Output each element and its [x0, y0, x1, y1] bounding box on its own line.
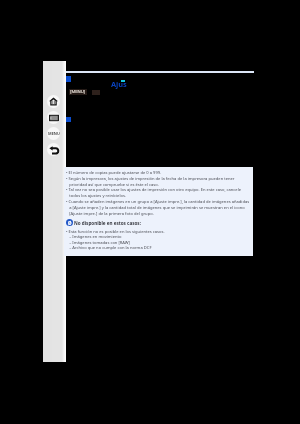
- staticText: • El número de copias puede ajustarse de…: [66, 170, 162, 176]
- staticText: • Cuando se añaden imágenes en un grupo …: [66, 199, 250, 205]
- staticText: MENU: [48, 131, 60, 136]
- staticText: • Según la impresora, los ajustes de imp…: [66, 176, 235, 182]
- staticText: No disponible en estos casos:: [74, 220, 141, 226]
- staticText: todos los ajustes y reinícielos.: [66, 193, 127, 199]
- staticText: – Archivo que no cumple con la norma DCF: [66, 245, 152, 251]
- staticText: [Ajuste impre.] de la primera foto del g…: [66, 211, 154, 217]
- staticText: – Imágenes en movimiento: [66, 234, 122, 240]
- staticText: • Esta función no es posible en los sigu…: [66, 229, 165, 235]
- button[interactable]: Home: [47, 95, 60, 108]
- staticText: [MENU]: [70, 89, 86, 95]
- button[interactable]: Back: [47, 143, 60, 156]
- staticText: – Imágenes tomadas con [RAW]: [66, 240, 130, 246]
- staticText: Ajus: [111, 79, 127, 89]
- staticText: a [Ajuste impre.] y la cantidad total de…: [66, 205, 245, 211]
- staticText: prioridad así que compruebe si es éste e…: [66, 182, 159, 188]
- staticText: • Tal vez no sea posible usar los ajuste…: [66, 187, 242, 193]
- button[interactable]: Display: [47, 111, 60, 124]
- staticText: Ø: [68, 220, 72, 226]
- button[interactable]: Menu: [47, 127, 60, 140]
